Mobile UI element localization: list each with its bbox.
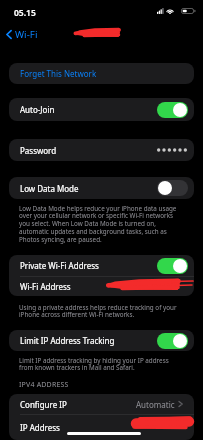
staticText: Low Data Mode helps reduce your iPhone d… bbox=[19, 204, 178, 244]
staticText: Automatic bbox=[136, 399, 175, 410]
staticText: Low Data Mode bbox=[20, 183, 79, 194]
staticText: Wi-Fi bbox=[15, 28, 38, 41]
button[interactable]: Password bbox=[9, 139, 194, 161]
staticText: Limit IP Address Tracking bbox=[20, 335, 115, 346]
staticText: Configure IP bbox=[20, 399, 67, 410]
button[interactable]: Toggle on bbox=[157, 102, 188, 118]
button[interactable]: Toggle on bbox=[157, 333, 188, 349]
button[interactable]: Toggle off bbox=[157, 180, 188, 196]
button[interactable]: Private Wi-Fi Address bbox=[9, 255, 194, 276]
button[interactable]: IP Address bbox=[9, 415, 194, 440]
button[interactable]: Low Data Mode bbox=[9, 177, 194, 199]
button[interactable]: Auto-Join bbox=[9, 98, 194, 121]
button[interactable]: Limit IP Address Tracking bbox=[9, 330, 194, 351]
button[interactable]: Forget This Network bbox=[9, 63, 194, 84]
staticText: Wi-Fi Address bbox=[20, 281, 71, 292]
button[interactable]: Toggle on bbox=[157, 258, 188, 274]
staticText: Password bbox=[20, 145, 57, 156]
staticText: Using a private address helps reduce tra… bbox=[19, 303, 178, 319]
staticText: 05.15 bbox=[14, 7, 36, 19]
button[interactable]: Wi-Fi Address bbox=[9, 277, 194, 296]
staticText: Private Wi-Fi Address bbox=[20, 260, 99, 271]
button[interactable]: Configure IP bbox=[9, 394, 194, 414]
staticText: Limit IP address tracking by hiding your… bbox=[19, 356, 178, 372]
button[interactable]: Wi-Fi bbox=[3, 26, 41, 42]
staticText: IP Address bbox=[20, 422, 60, 433]
staticText: Forget This Network bbox=[20, 68, 97, 79]
staticText: IPV4 ADDRESS bbox=[19, 380, 69, 390]
staticText: Auto-Join bbox=[20, 104, 55, 115]
